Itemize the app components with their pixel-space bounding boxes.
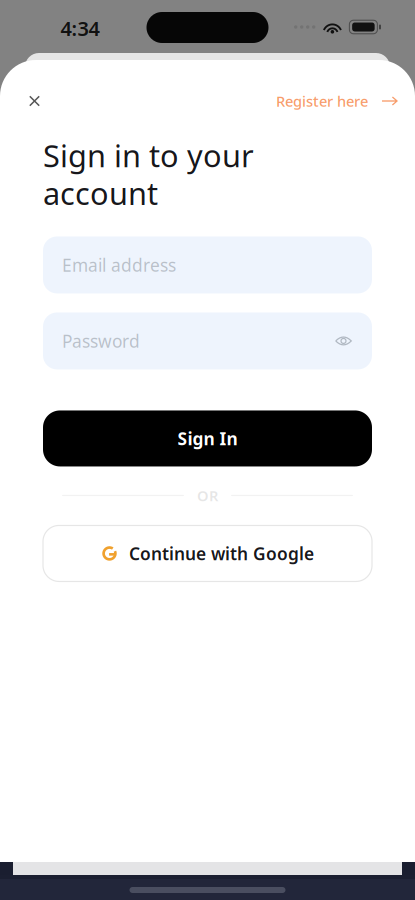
button[interactable]: Close bbox=[29, 87, 69, 115]
button[interactable]: Sign In bbox=[43, 410, 372, 466]
staticText: Email address bbox=[62, 253, 176, 276]
button[interactable]: Register here bbox=[276, 87, 397, 115]
staticText: Continue with Google bbox=[129, 542, 314, 565]
staticText: OR bbox=[197, 486, 218, 505]
staticText: Sign in to your bbox=[43, 135, 254, 176]
staticText: 4:34 bbox=[60, 15, 99, 42]
staticText: Sign In bbox=[177, 427, 237, 450]
staticText: Register here bbox=[276, 91, 368, 111]
staticText: Password bbox=[62, 329, 140, 352]
staticText: account bbox=[43, 173, 158, 213]
button[interactable]: Continue with Google bbox=[43, 525, 372, 581]
